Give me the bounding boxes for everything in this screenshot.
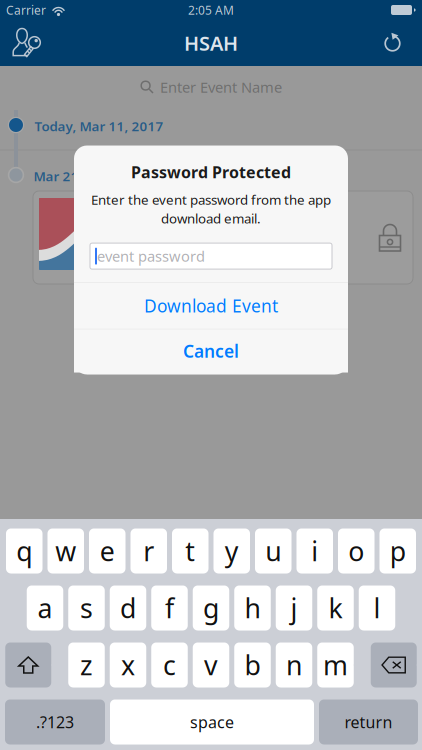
- staticText: o: [348, 533, 364, 569]
- staticText: t: [185, 533, 195, 569]
- button[interactable]: k: [317, 585, 354, 630]
- button[interactable]: s: [68, 585, 105, 630]
- staticText: m: [323, 647, 348, 683]
- button[interactable]: q: [6, 528, 42, 573]
- staticText: s: [80, 590, 93, 626]
- staticText: a: [37, 590, 52, 626]
- staticText: p: [390, 533, 406, 569]
- button[interactable]: b: [234, 642, 271, 687]
- staticText: Cancel: [183, 339, 239, 362]
- button[interactable]: n: [276, 642, 312, 687]
- button[interactable]: Delete: [371, 642, 417, 687]
- staticText: w: [55, 533, 76, 569]
- staticText: b: [244, 647, 260, 683]
- staticText: l: [373, 590, 380, 626]
- button[interactable]: Refresh: [370, 21, 416, 65]
- staticText: q: [16, 533, 32, 569]
- staticText: f: [165, 590, 174, 626]
- staticText: c: [163, 647, 176, 683]
- button[interactable]: Cancel: [74, 329, 348, 372]
- button[interactable]: r: [130, 528, 167, 573]
- staticText: Today, Mar 11, 2017: [34, 117, 163, 135]
- staticText: Enter Event Name: [160, 77, 282, 97]
- button[interactable]: i: [296, 528, 333, 573]
- button[interactable]: l: [359, 585, 395, 630]
- staticText: Mar 21: [33, 167, 78, 185]
- staticText: i: [311, 533, 318, 569]
- staticText: k: [328, 590, 342, 626]
- staticText: .?123: [36, 711, 74, 733]
- button[interactable]: Account: [6, 21, 52, 65]
- button[interactable]: c: [151, 642, 188, 687]
- staticText: v: [204, 647, 218, 683]
- staticText: u: [265, 533, 281, 569]
- staticText: Enter the event password from the app: [91, 191, 331, 208]
- staticText: Password Protected: [131, 161, 291, 183]
- button[interactable]: y: [213, 528, 250, 573]
- button[interactable]: w: [47, 528, 84, 573]
- staticText: d: [120, 590, 136, 626]
- staticText: download email.: [161, 209, 261, 227]
- button[interactable]: t: [172, 528, 208, 573]
- staticText: x: [121, 647, 135, 683]
- staticText: space: [190, 711, 234, 733]
- button[interactable]: h: [234, 585, 271, 630]
- button[interactable]: j: [276, 585, 312, 630]
- button[interactable]: Download Event: [74, 283, 348, 329]
- button[interactable]: space: [110, 699, 314, 744]
- staticText: Carrier: [6, 2, 46, 18]
- staticText: n: [286, 647, 302, 683]
- staticText: g: [203, 590, 219, 626]
- staticText: r: [143, 533, 154, 569]
- button[interactable]: [33, 191, 413, 284]
- staticText: event password: [97, 246, 205, 266]
- button[interactable]: e: [89, 528, 125, 573]
- staticText: j: [290, 590, 297, 626]
- staticText: 2:05 AM: [188, 2, 234, 18]
- button[interactable]: d: [110, 585, 146, 630]
- staticText: e: [100, 533, 115, 569]
- button[interactable]: z: [68, 642, 105, 687]
- staticText: y: [225, 533, 239, 569]
- staticText: z: [80, 647, 93, 683]
- button[interactable]: p: [379, 528, 416, 573]
- staticText: HSAH: [184, 30, 238, 56]
- button[interactable]: return: [319, 699, 418, 744]
- button[interactable]: m: [317, 642, 354, 687]
- button[interactable]: u: [255, 528, 291, 573]
- button[interactable]: Shift: [5, 642, 51, 687]
- staticText: h: [244, 590, 260, 626]
- button[interactable]: f: [151, 585, 188, 630]
- button[interactable]: g: [193, 585, 229, 630]
- button[interactable]: .?123: [5, 699, 105, 744]
- button[interactable]: o: [338, 528, 374, 573]
- button[interactable]: a: [27, 585, 63, 630]
- staticText: Download Event: [144, 294, 278, 317]
- button[interactable]: x: [110, 642, 146, 687]
- button[interactable]: v: [193, 642, 229, 687]
- staticText: return: [344, 711, 392, 733]
